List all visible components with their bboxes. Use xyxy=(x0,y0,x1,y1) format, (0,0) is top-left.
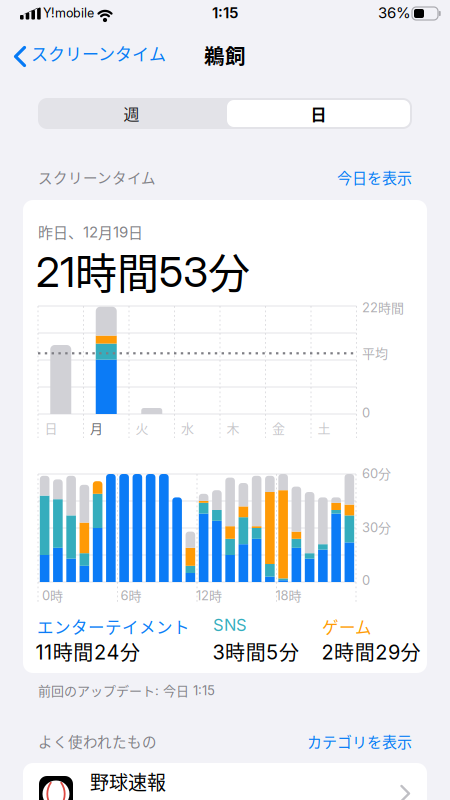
staticText: 60分 xyxy=(362,464,391,482)
staticText: 鵜飼 xyxy=(204,40,246,69)
staticText: 今日を表示 xyxy=(337,166,412,188)
button[interactable]: 野球速報 xyxy=(23,763,427,800)
staticText: 22時間 xyxy=(362,298,404,316)
staticText: 36% xyxy=(378,4,411,22)
staticText: カテゴリを表示 xyxy=(307,730,412,752)
button[interactable]: 週 xyxy=(38,98,225,129)
staticText: 11時間24分 xyxy=(35,637,140,666)
staticText: 昨日、12月19日 xyxy=(38,221,143,242)
button[interactable]: 日 xyxy=(227,100,410,127)
staticText: 18時 xyxy=(275,586,301,604)
staticText: 2時間29分 xyxy=(321,637,420,666)
staticText: 0 xyxy=(362,572,370,588)
staticText: スクリーンタイム xyxy=(38,167,156,187)
staticText: 30分 xyxy=(362,518,391,536)
staticText: 金 xyxy=(272,418,285,437)
staticText: 木 xyxy=(226,418,239,437)
staticText: ゲーム xyxy=(322,615,372,638)
staticText: 3時間5分 xyxy=(212,637,299,666)
staticText: SNS xyxy=(213,615,247,634)
staticText: 日 xyxy=(44,418,57,437)
staticText: 0 xyxy=(362,405,370,420)
button[interactable]: 戻る xyxy=(12,40,168,72)
staticText: 土 xyxy=(317,418,330,437)
button[interactable]: カテゴリを表示 xyxy=(307,730,412,752)
staticText: 週 xyxy=(123,102,139,125)
staticText: 火 xyxy=(135,418,148,437)
staticText: 21時間53分 xyxy=(36,241,250,300)
staticText: Y!mobile xyxy=(43,5,94,20)
staticText: 前回のアップデート: 今日 1:15 xyxy=(38,681,215,699)
staticText: 12時 xyxy=(196,586,222,604)
staticText: 平均 xyxy=(362,343,388,362)
staticText: よく使われたもの xyxy=(38,731,157,751)
staticText: 1:15 xyxy=(212,4,238,22)
button[interactable]: 今日を表示 xyxy=(337,166,412,188)
staticText: 水 xyxy=(181,418,194,437)
staticText: 野球速報 xyxy=(90,768,166,795)
staticText: エンターテイメント xyxy=(37,615,190,638)
staticText: 月 xyxy=(90,418,103,437)
staticText: 0時 xyxy=(42,586,63,604)
staticText: スクリーンタイム xyxy=(31,41,166,65)
staticText: 日 xyxy=(310,102,326,125)
staticText: 6時 xyxy=(120,586,141,604)
